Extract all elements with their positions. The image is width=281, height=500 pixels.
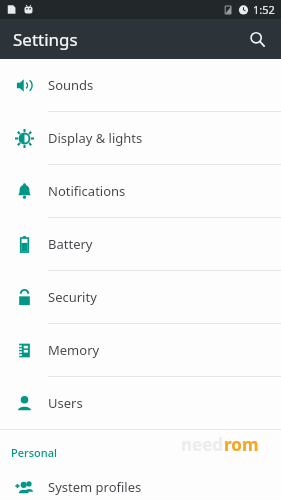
button[interactable]: Display & lights (0, 112, 281, 164)
button[interactable]: Security (0, 271, 281, 323)
staticText: Sounds (48, 76, 94, 94)
button[interactable]: Search (239, 21, 275, 57)
staticText: Notifications (48, 182, 126, 200)
button[interactable]: System profiles (0, 474, 281, 500)
staticText: Display & lights (48, 129, 143, 147)
button[interactable]: Battery (0, 218, 281, 270)
staticText: 1:52 (253, 2, 275, 17)
staticText: Security (48, 288, 97, 306)
button[interactable]: Sounds (0, 59, 281, 111)
staticText: Personal (11, 445, 57, 460)
staticText: System profiles (48, 478, 142, 496)
staticText: Battery (48, 235, 93, 253)
staticText: need (181, 433, 224, 456)
staticText: rom (224, 433, 259, 456)
staticText: Memory (48, 341, 100, 359)
staticText: Users (48, 394, 83, 412)
button[interactable]: Notifications (0, 165, 281, 217)
button[interactable]: Memory (0, 324, 281, 376)
button[interactable]: Users (0, 377, 281, 429)
staticText: Settings (13, 28, 78, 51)
